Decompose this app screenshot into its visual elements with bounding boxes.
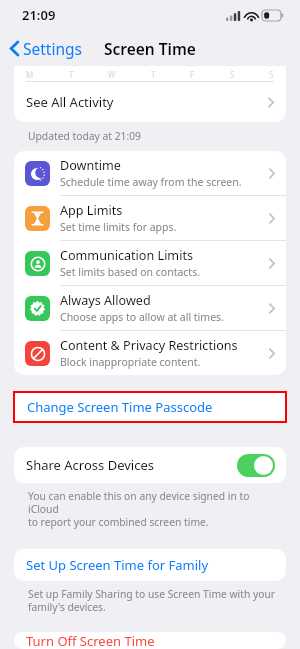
button[interactable]: Share Across Devices [14, 447, 286, 483]
staticText: Content & Privacy Restrictions [60, 337, 238, 354]
button[interactable]: Change Screen Time Passcode [15, 393, 285, 421]
staticText: Set limits based on contacts. [60, 265, 200, 279]
staticText: See All Activity [26, 93, 268, 111]
button[interactable]: Settings [0, 34, 90, 63]
button[interactable]: See All Activity [14, 82, 286, 122]
staticText: S [230, 69, 235, 80]
staticText: W [108, 69, 116, 80]
staticText: Settings [23, 38, 82, 59]
staticText: Set time limits for apps. [60, 220, 177, 234]
staticText: Turn Off Screen Time [26, 632, 155, 649]
staticText: 21:09 [22, 6, 56, 24]
button[interactable]: Communication Limits [14, 241, 286, 285]
staticText: Block inappropriate content. [60, 355, 201, 369]
button[interactable]: Content & Privacy Restrictions [14, 331, 286, 375]
staticText: App Limits [60, 202, 123, 219]
button[interactable]: App Limits [14, 196, 286, 240]
staticText: Always Allowed [60, 292, 151, 309]
staticText: Change Screen Time Passcode [27, 398, 213, 416]
staticText: Set Up Screen Time for Family [26, 556, 209, 574]
staticText: F [190, 69, 195, 80]
staticText: Set up Family Sharing to use Screen Time… [28, 587, 276, 614]
button[interactable]: Always Allowed [14, 286, 286, 330]
staticText: T [69, 69, 74, 80]
staticText: Choose apps to allow at all times. [60, 310, 224, 324]
staticText: Downtime [60, 157, 121, 174]
staticText: You can enable this on any device signed… [28, 489, 282, 529]
button[interactable]: Set Up Screen Time for Family [14, 549, 286, 581]
staticText: Communication Limits [60, 247, 193, 264]
staticText: Schedule time away from the screen. [60, 175, 242, 189]
staticText: Updated today at 21:09 [28, 129, 141, 143]
staticText: T [151, 69, 156, 80]
button[interactable]: Downtime [14, 151, 286, 195]
staticText: M [26, 69, 34, 80]
button[interactable]: Turn Off Screen Time [14, 632, 286, 649]
button[interactable]: Share Across Devices toggle, on [237, 454, 275, 477]
staticText: S [269, 69, 274, 80]
staticText: Share Across Devices [26, 456, 237, 474]
staticText: Screen Time [104, 38, 196, 59]
